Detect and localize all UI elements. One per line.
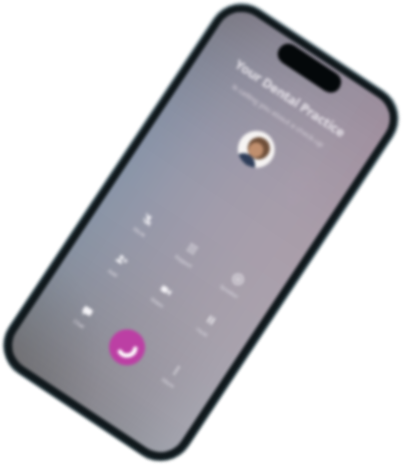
button[interactable]: Video: [130, 270, 190, 324]
button[interactable]: Hold: [175, 300, 235, 354]
button[interactable]: End call: [102, 322, 152, 372]
staticText: More: [161, 376, 176, 389]
button[interactable]: Chat: [52, 292, 112, 346]
button[interactable]: Keypad: [157, 230, 217, 283]
button[interactable]: Speaker: [202, 259, 262, 313]
button[interactable]: Add: [86, 241, 146, 295]
staticText: Mute: [132, 225, 148, 239]
staticText: Your Dental Practice: [231, 55, 349, 141]
staticText: Keypad: [174, 253, 194, 269]
button[interactable]: More: [142, 351, 201, 405]
button[interactable]: Mute: [113, 200, 173, 254]
staticText: Hold: [195, 325, 210, 338]
staticText: Chat: [72, 317, 86, 330]
staticText: Video: [149, 295, 166, 309]
staticText: is calling you about a check-up: [230, 81, 326, 149]
staticText: Speaker: [219, 282, 240, 300]
staticText: Add: [107, 267, 120, 279]
